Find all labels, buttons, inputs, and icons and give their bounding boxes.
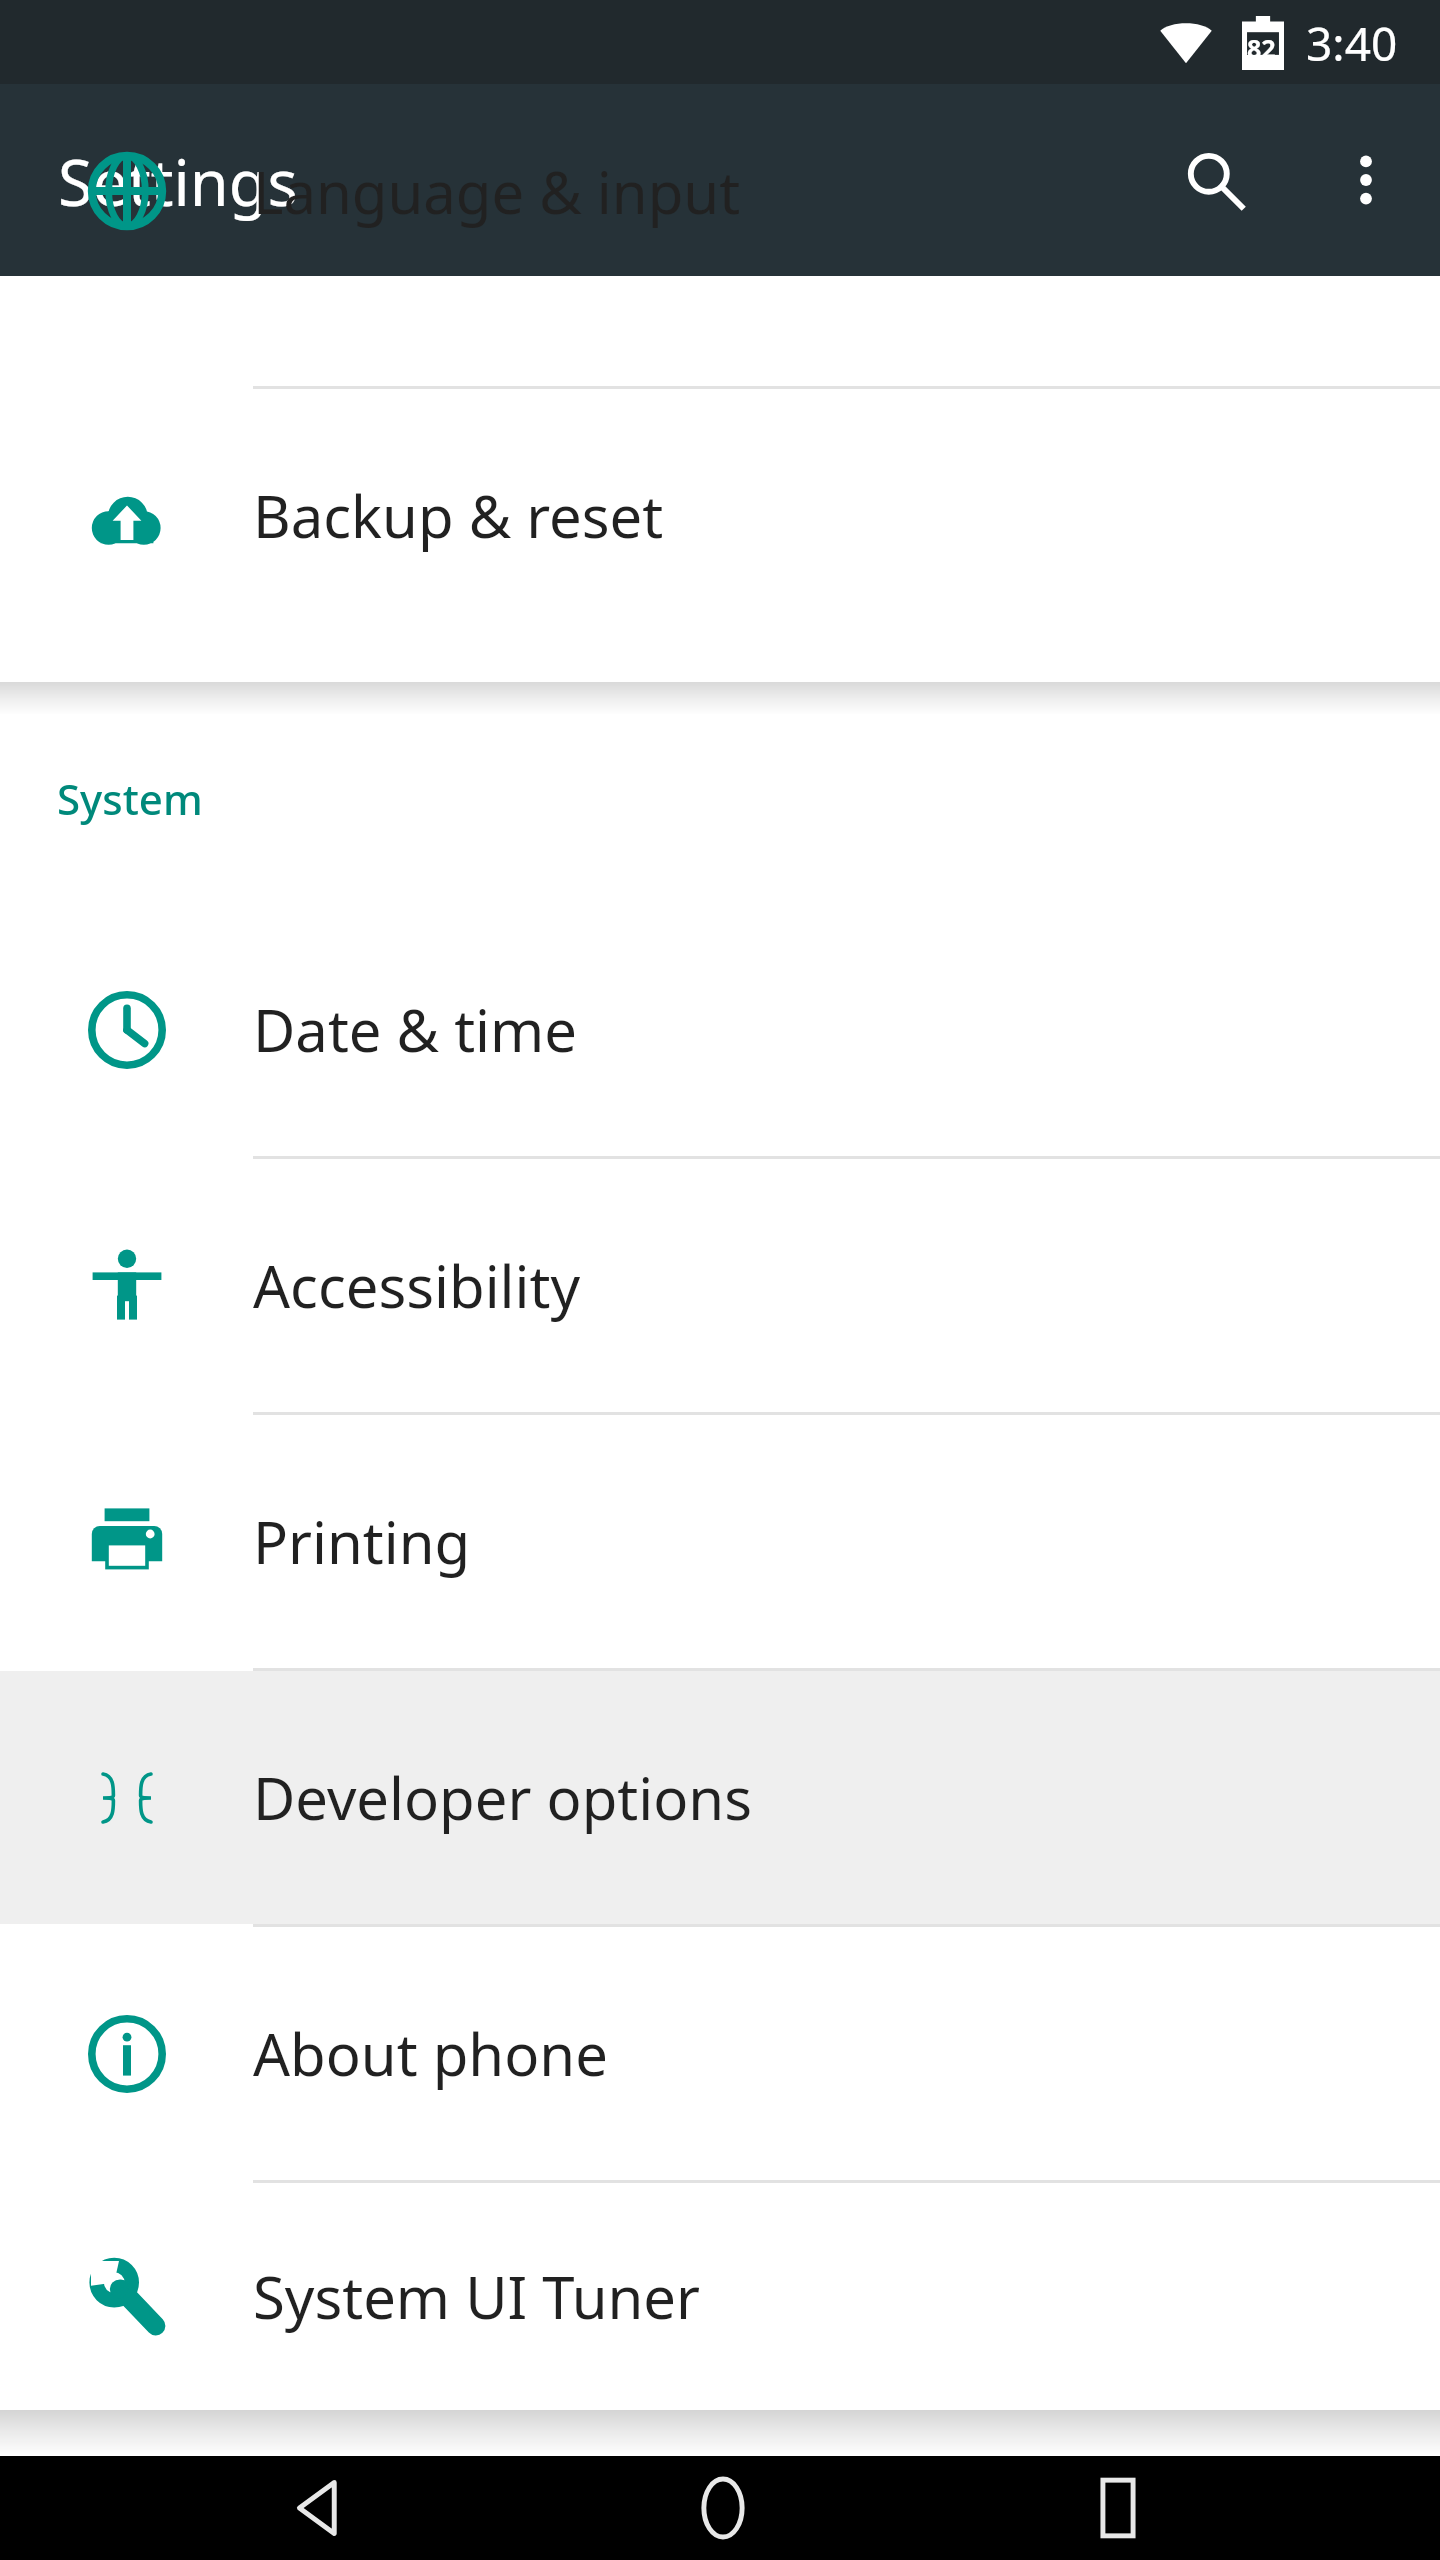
staticText: Settings [58, 139, 298, 225]
staticText: Backup & reset [253, 476, 664, 555]
staticText: About phone [253, 2014, 608, 2093]
button[interactable]: Date & time [0, 903, 1440, 1156]
button[interactable]: More options [1294, 108, 1438, 252]
staticText: Accessibility [253, 1246, 581, 1325]
button[interactable]: About phone [0, 1927, 1440, 2180]
staticText: 82 [1247, 31, 1276, 65]
staticText: Printing [253, 1502, 471, 1581]
button[interactable]: Language & input [0, 136, 1440, 246]
staticText: System [57, 770, 203, 827]
staticText: 3:40 [1306, 12, 1398, 75]
staticText: Date & time [253, 990, 577, 1069]
button[interactable]: Recent apps [1046, 2456, 1190, 2560]
button[interactable]: Back [246, 2456, 390, 2560]
button[interactable]: Home [651, 2456, 795, 2560]
button[interactable]: Backup & reset [0, 389, 1440, 642]
button[interactable]: Search [1143, 108, 1287, 252]
staticText: Developer options [253, 1758, 752, 1837]
button[interactable]: Printing [0, 1415, 1440, 1668]
button[interactable]: Developer options [0, 1671, 1440, 1924]
staticText: Language & input [253, 152, 741, 231]
button[interactable]: Accessibility [0, 1159, 1440, 1412]
staticText: System UI Tuner [253, 2257, 701, 2336]
button[interactable]: System UI Tuner [0, 2183, 1440, 2410]
